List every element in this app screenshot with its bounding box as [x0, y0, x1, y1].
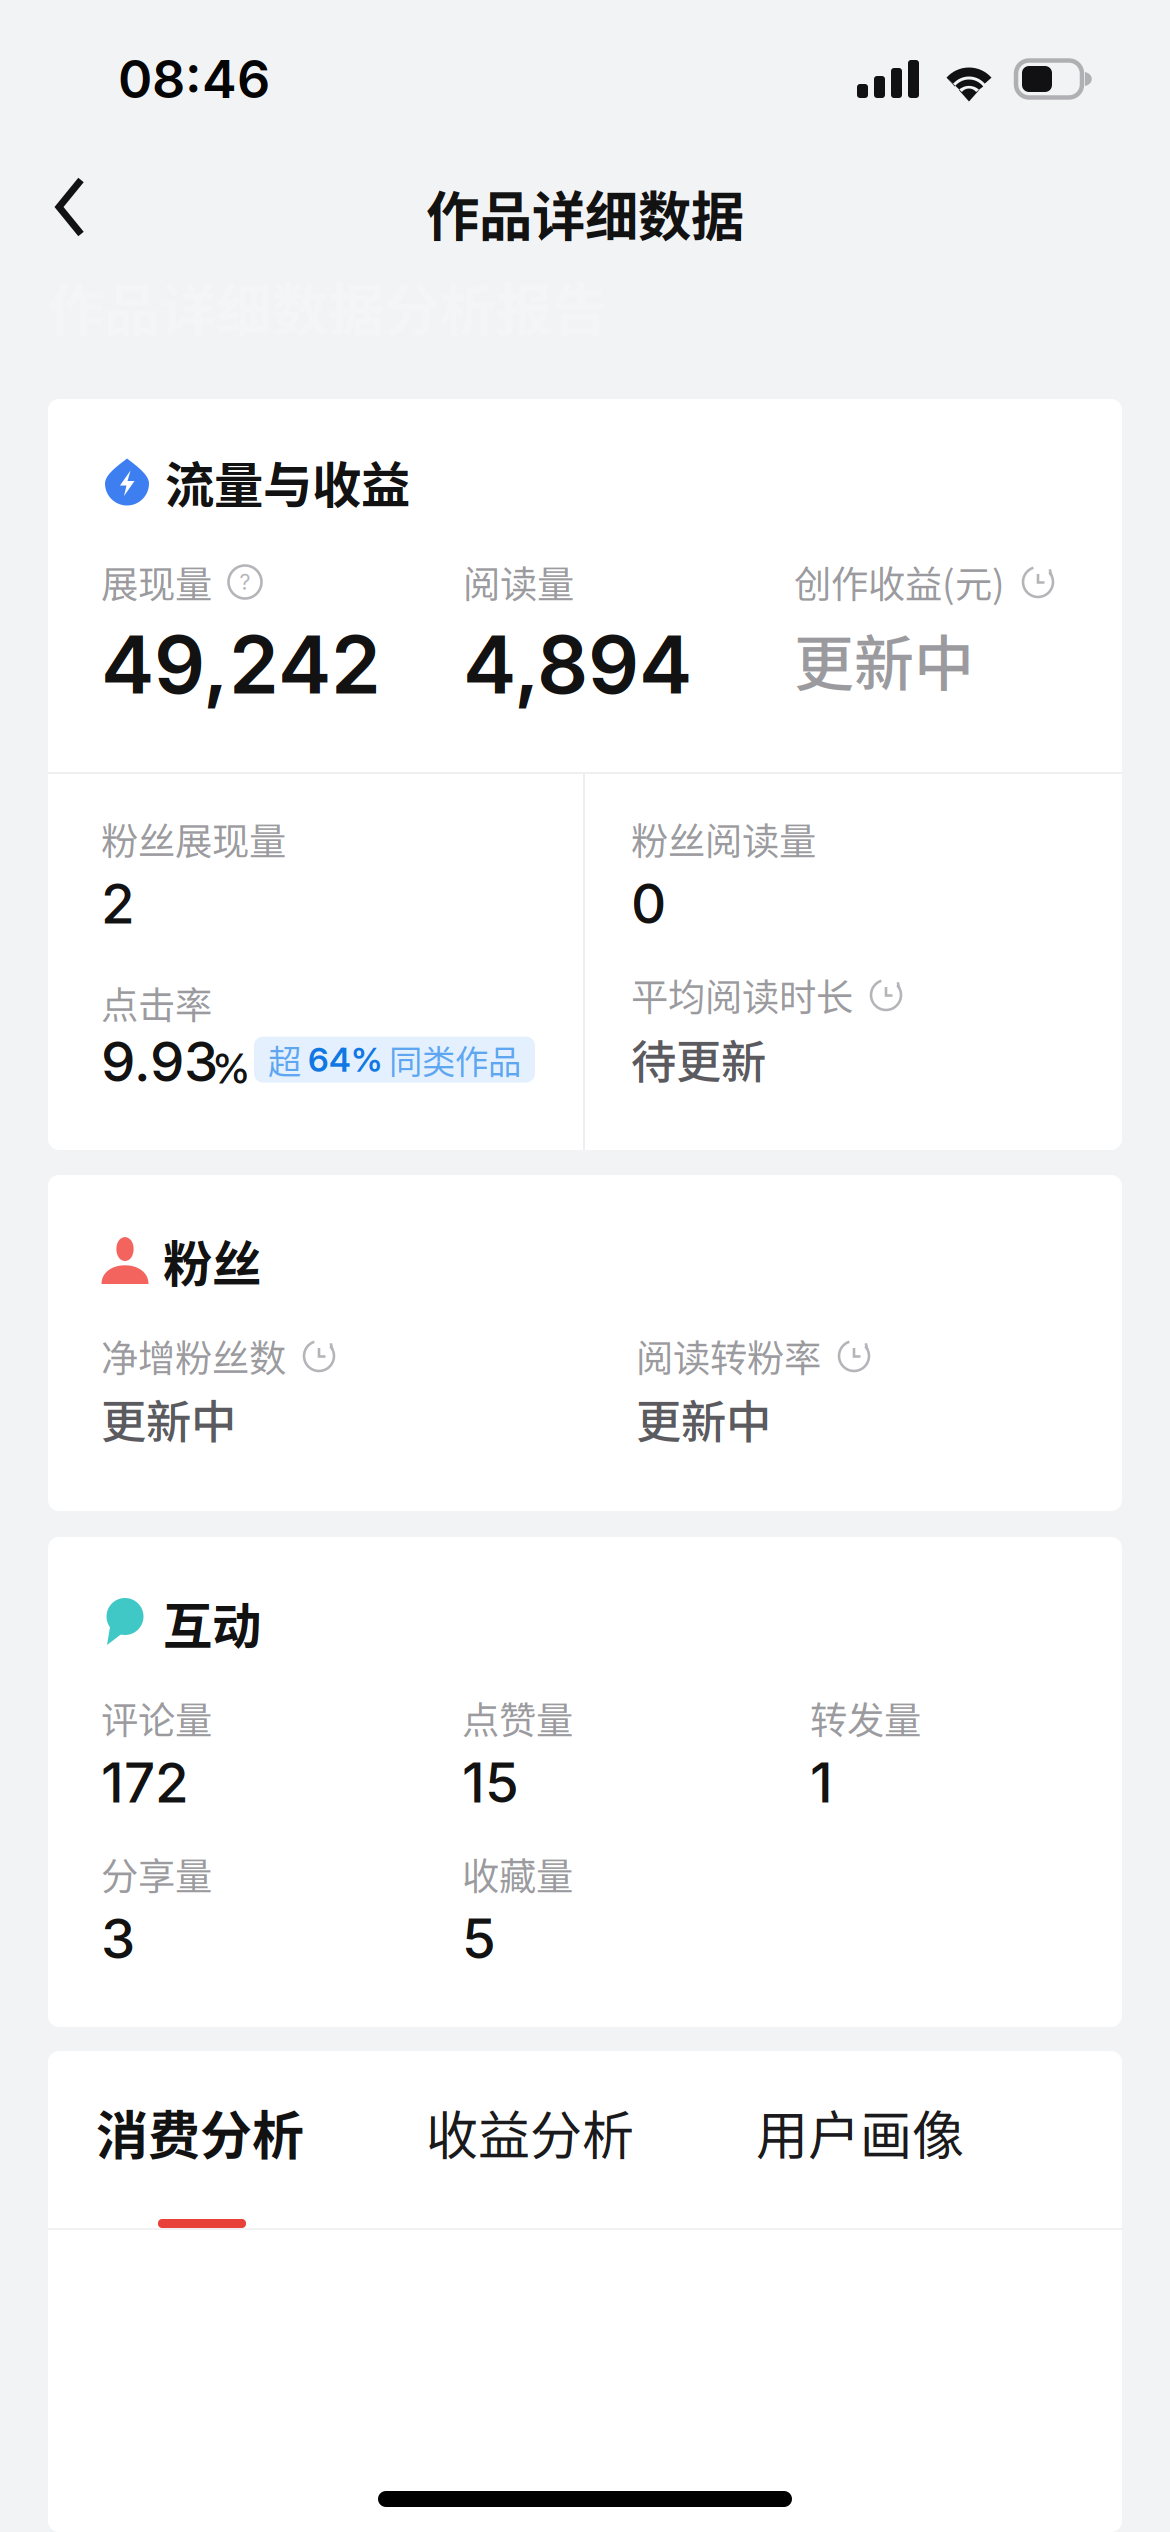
staticText: 粉丝 — [163, 1225, 261, 1296]
staticText: 更新中 — [636, 1386, 771, 1452]
staticText: 收藏量 — [462, 1847, 573, 1901]
staticText: 5 — [462, 1905, 496, 1971]
staticText: 互动 — [163, 1587, 261, 1658]
button[interactable]: 消费分析 — [96, 2051, 311, 2228]
staticText: 更新中 — [794, 616, 974, 703]
staticText: 08:46 — [118, 47, 270, 110]
staticText: 用户画像 — [756, 2094, 964, 2170]
staticText: 展现量 — [101, 555, 212, 609]
button[interactable]: 收益分析 — [426, 2051, 641, 2228]
button[interactable]: 用户画像 — [756, 2051, 971, 2228]
staticText: 更新中 — [101, 1386, 236, 1452]
staticText: 超 — [268, 1035, 308, 1084]
staticText: 阅读量 — [463, 555, 574, 609]
staticText: 消费分析 — [96, 2094, 304, 2170]
staticText: 待更新 — [631, 1026, 766, 1092]
staticText: 15 — [462, 1749, 519, 1815]
staticText: 净增粉丝数 — [101, 1329, 286, 1383]
staticText: 评论量 — [101, 1691, 212, 1745]
staticText: 收益分析 — [426, 2094, 634, 2170]
staticText: 粉丝阅读量 — [631, 812, 816, 866]
staticText: 9.93 — [101, 1028, 218, 1094]
staticText: 172 — [101, 1749, 189, 1815]
staticText: 同类作品 — [382, 1035, 521, 1084]
staticText: 粉丝展现量 — [101, 812, 286, 866]
button[interactable]: Back — [0, 158, 119, 268]
staticText: 作品详细数据 — [426, 174, 744, 252]
staticText: 创作收益(元) — [794, 555, 1005, 609]
staticText: 2 — [101, 870, 135, 936]
staticText: 49,242 — [101, 616, 381, 713]
staticText: 64% — [308, 1039, 382, 1080]
staticText: 3 — [101, 1905, 135, 1971]
staticText: % — [213, 1044, 249, 1094]
staticText: 转发量 — [810, 1691, 921, 1745]
staticText: 平均阅读时长 — [631, 968, 853, 1022]
staticText: 1 — [810, 1749, 833, 1815]
staticText: 分享量 — [101, 1847, 212, 1901]
staticText: 点赞量 — [462, 1691, 573, 1745]
staticText: 流量与收益 — [165, 446, 410, 517]
staticText: 点击率 — [101, 976, 212, 1030]
staticText: 阅读转粉率 — [636, 1329, 821, 1383]
staticText: ? — [239, 569, 250, 595]
staticText: 0 — [631, 870, 666, 936]
staticText: 4,894 — [463, 616, 692, 713]
